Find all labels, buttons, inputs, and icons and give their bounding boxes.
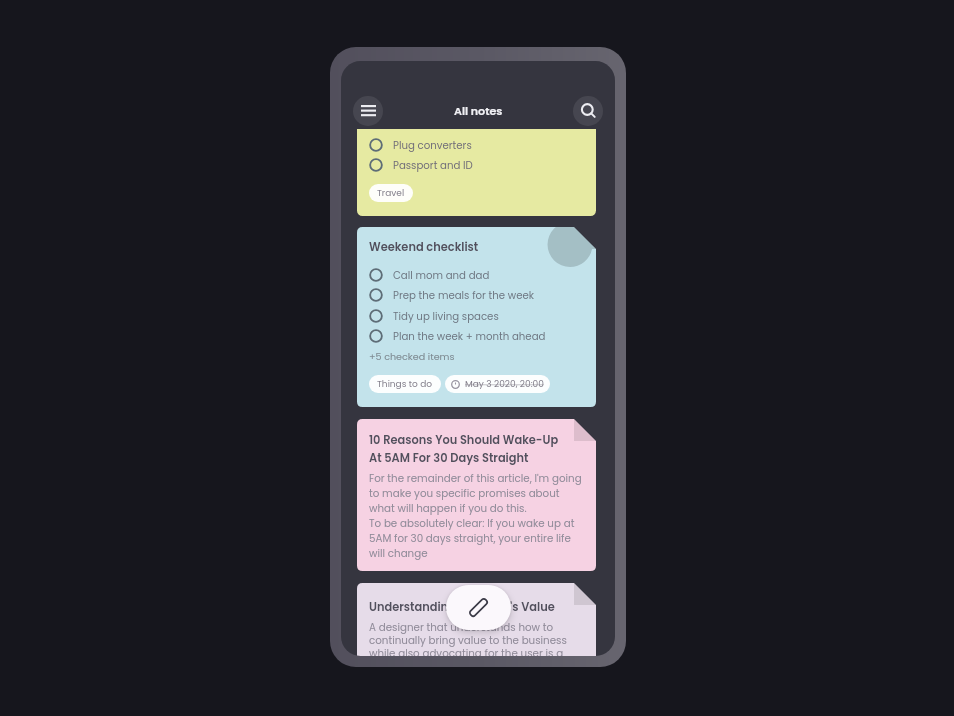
- button[interactable]: Understanding Designer's Value: [357, 583, 596, 656]
- staticText: May 3 2020, 20:00: [465, 378, 544, 391]
- staticText: Things to do: [377, 378, 433, 391]
- button[interactable]: May 3 2020, 20:00: [445, 375, 550, 393]
- staticText: Plan the week + month ahead: [393, 329, 546, 343]
- staticText: A designer that understands how to conti…: [369, 620, 567, 656]
- button[interactable]: Menu: [353, 96, 383, 126]
- staticText: 10 Reasons You Should Wake-Up At 5AM For…: [369, 432, 559, 466]
- button[interactable]: Weekend checklist: [357, 227, 596, 407]
- staticText: Tidy up living spaces: [393, 309, 499, 323]
- button[interactable]: New note: [446, 585, 511, 630]
- staticText: Passport and ID: [393, 158, 473, 172]
- staticText: Prep the meals for the week: [393, 288, 535, 302]
- staticText: For the remainder of this article, I'm g…: [369, 471, 582, 560]
- button[interactable]: Travel: [369, 184, 413, 202]
- button[interactable]: Search: [573, 96, 603, 126]
- staticText: Understanding Designer's Value: [369, 599, 555, 615]
- staticText: All notes: [454, 103, 503, 119]
- staticText: Travel: [377, 187, 405, 200]
- staticText: Call mom and dad: [393, 268, 490, 282]
- button[interactable]: 10 Reasons You Should Wake-Up At 5AM For…: [357, 419, 596, 571]
- button[interactable]: Things to do: [369, 375, 441, 393]
- staticText: Weekend checklist: [369, 239, 479, 255]
- staticText: +5 checked items: [369, 350, 455, 363]
- button[interactable]: Plug converters: [357, 129, 596, 216]
- staticText: Plug converters: [393, 138, 472, 152]
